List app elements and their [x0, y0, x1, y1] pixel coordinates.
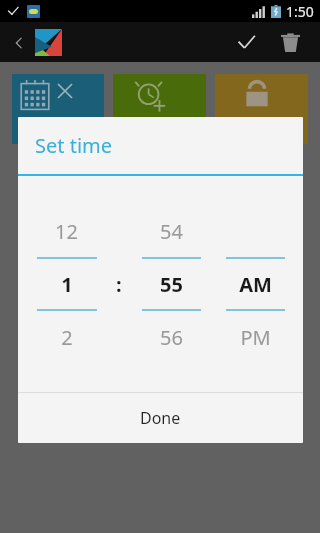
- button[interactable]: Decrement: [24, 311, 109, 363]
- button[interactable]: Decrement: [213, 311, 297, 363]
- button[interactable]: Increment: [129, 205, 213, 257]
- button[interactable]: Decrement: [129, 311, 213, 363]
- button[interactable]: Save: [224, 22, 268, 62]
- staticText: 55: [160, 271, 183, 298]
- staticText: Done: [140, 407, 181, 429]
- button[interactable]: 55: [129, 259, 213, 309]
- staticText: 12: [55, 218, 78, 245]
- button[interactable]: Increment: [24, 205, 109, 257]
- button[interactable]: [113, 74, 206, 144]
- staticText: 1: [61, 271, 73, 298]
- button[interactable]: 1: [24, 259, 109, 309]
- button[interactable]: Done: [18, 393, 303, 443]
- button[interactable]: AM: [213, 259, 297, 309]
- button[interactable]: Navigate up: [6, 30, 32, 56]
- button[interactable]: [215, 74, 308, 144]
- staticText: AM: [239, 271, 272, 298]
- staticText: 56: [160, 324, 183, 351]
- staticText: 1:50: [286, 2, 314, 21]
- staticText: Set time: [35, 132, 113, 159]
- button[interactable]: [12, 74, 104, 144]
- staticText: 2: [61, 324, 73, 351]
- staticText: 54: [160, 218, 183, 245]
- staticText: PM: [240, 324, 271, 351]
- button[interactable]: Delete: [268, 22, 312, 62]
- staticText: :: [116, 271, 122, 298]
